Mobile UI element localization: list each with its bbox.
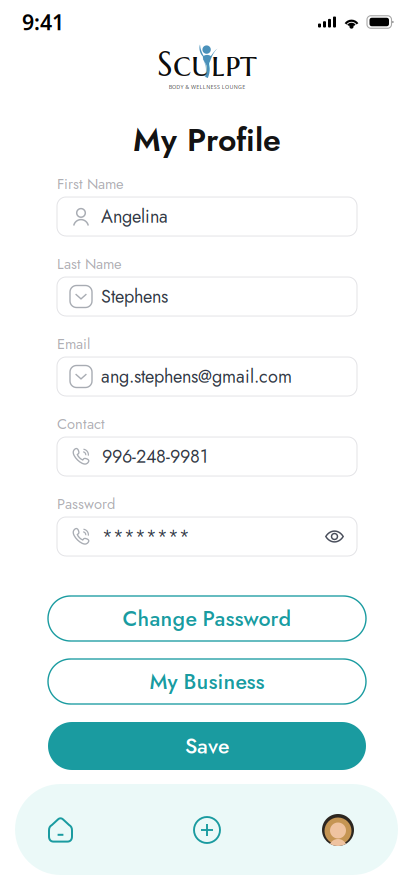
staticText: Sculpt: [157, 42, 257, 86]
staticText: 9:41: [22, 8, 64, 36]
button[interactable]: Show password: [325, 527, 344, 546]
button[interactable]: Save: [48, 722, 366, 770]
button[interactable]: Profile: [300, 799, 376, 861]
staticText: First Name: [57, 173, 124, 195]
staticText: Change Password: [122, 603, 291, 634]
staticText: BODY & WELLNESS LOUNGE: [169, 83, 245, 91]
staticText: Last Name: [57, 253, 122, 275]
staticText: Email: [57, 333, 90, 355]
staticText: ang.stephens@gmail.com: [101, 363, 292, 389]
button[interactable]: My Business: [48, 659, 366, 704]
staticText: My Profile: [133, 117, 281, 163]
staticText: Password: [57, 493, 115, 515]
button[interactable]: Add: [169, 799, 245, 861]
staticText: Contact: [57, 413, 105, 435]
staticText: ********: [102, 523, 190, 549]
staticText: Angelina: [101, 203, 168, 229]
staticText: Stephens: [101, 283, 168, 309]
button[interactable]: Change Password: [48, 596, 366, 641]
staticText: 996-248-9981: [102, 443, 208, 469]
staticText: My Business: [149, 666, 264, 697]
staticText: Save: [185, 731, 229, 761]
button[interactable]: Home: [24, 799, 100, 861]
